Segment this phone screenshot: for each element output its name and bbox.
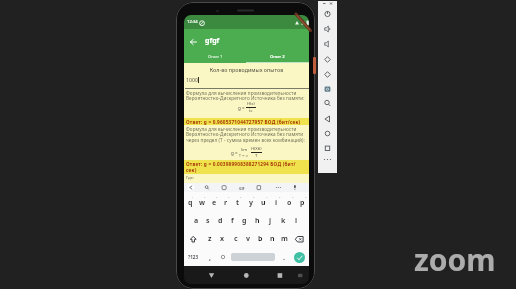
button[interactable] (318, 125, 337, 141)
staticText: lim (241, 147, 248, 153)
staticText: i (275, 198, 278, 208)
button[interactable] (267, 266, 309, 284)
staticText: ?123 (188, 254, 199, 260)
staticText: 2 (204, 196, 206, 199)
staticText: c (234, 234, 238, 244)
button[interactable] (290, 230, 309, 248)
staticText: j (269, 216, 272, 226)
staticText: 12:34 (187, 19, 198, 25)
button[interactable]: 6 (244, 194, 257, 212)
staticText: t̄c (249, 108, 253, 114)
staticText: h (255, 216, 260, 226)
staticText: m (281, 234, 288, 244)
button[interactable]: d (214, 212, 226, 230)
button[interactable]: 2 (196, 194, 208, 212)
button[interactable] (318, 31, 337, 46)
button[interactable] (187, 35, 200, 48)
staticText: Кол-во проводимых опытов (184, 66, 309, 73)
button[interactable]: b (254, 230, 266, 248)
staticText: z (208, 234, 212, 244)
button[interactable] (184, 230, 203, 248)
button[interactable]: z (203, 230, 216, 248)
button[interactable]: 4 (220, 194, 232, 212)
button[interactable]: Опыт 1 (184, 51, 246, 63)
staticText: u (261, 198, 266, 208)
staticText: Формула для вычисления производительност… (186, 90, 305, 102)
button[interactable] (318, 157, 337, 173)
button[interactable]: a (190, 212, 202, 230)
button[interactable]: 0 (296, 194, 309, 212)
button[interactable] (318, 93, 337, 109)
staticText: 9 (292, 196, 294, 199)
button[interactable]: 5 (232, 194, 244, 212)
button[interactable] (231, 253, 275, 261)
staticText: t (236, 198, 240, 208)
button[interactable]: g (238, 212, 251, 230)
staticText: gfgf (205, 36, 220, 46)
button[interactable]: . (277, 248, 290, 266)
button[interactable]: f (226, 212, 238, 230)
staticText: 8 (279, 196, 281, 199)
staticText: v (246, 234, 250, 244)
staticText: T (255, 153, 258, 159)
button[interactable] (318, 109, 337, 125)
button[interactable]: l (290, 212, 303, 230)
staticText: Ответ: g = 0.9605371044727957 БОД (бит/с… (186, 119, 301, 125)
button[interactable]: h (251, 212, 264, 230)
button[interactable]: , (203, 248, 216, 266)
staticText: e (212, 198, 217, 208)
button[interactable]: 9 (283, 194, 296, 212)
button[interactable]: j (264, 212, 277, 230)
staticText: g = (231, 150, 239, 156)
button[interactable]: ?123 (184, 248, 203, 266)
staticText: 7 (266, 196, 268, 199)
staticText: l (295, 216, 298, 226)
button[interactable] (290, 248, 309, 266)
staticText: d (218, 216, 223, 226)
staticText: 6 (253, 196, 255, 199)
button[interactable] (318, 16, 337, 31)
button[interactable]: m (278, 230, 290, 248)
staticText: . (283, 253, 285, 262)
button[interactable]: s (202, 212, 214, 230)
button[interactable]: x (216, 230, 229, 248)
button[interactable] (318, 46, 337, 61)
staticText: Формула для вычисления производительност… (186, 126, 305, 144)
staticText: Опыт 1 (208, 54, 223, 60)
button[interactable]: Опыт 2 (246, 51, 309, 63)
button[interactable] (225, 266, 267, 284)
staticText: 0 (305, 196, 307, 199)
button[interactable]: v (242, 230, 254, 248)
staticText: 5 (240, 196, 242, 199)
staticText: r (224, 198, 228, 208)
button[interactable]: 3 (208, 194, 220, 212)
button[interactable] (318, 141, 337, 157)
staticText: q (188, 198, 193, 208)
staticText: b (258, 234, 263, 244)
staticText: , (209, 253, 211, 262)
button[interactable]: 1 (184, 194, 196, 212)
staticText: H(Xб) (251, 146, 262, 152)
staticText: y (249, 198, 253, 208)
staticText: Опыт 2 (270, 54, 285, 60)
staticText: p (300, 198, 305, 208)
button[interactable]: n (266, 230, 278, 248)
button[interactable]: 8 (270, 194, 283, 212)
staticText: 3 (216, 196, 218, 199)
button[interactable] (216, 248, 229, 266)
staticText: g = (238, 105, 246, 111)
staticText: Ответ: g = 0.003989908388271294 БОД (бит… (186, 161, 296, 173)
button[interactable] (318, 1, 337, 16)
staticText: 1000 (186, 76, 198, 83)
button[interactable] (318, 61, 337, 77)
button[interactable] (318, 77, 337, 93)
staticText: g (242, 216, 247, 226)
button[interactable]: 7 (257, 194, 270, 212)
staticText: 4 (228, 196, 230, 199)
staticText: f (231, 216, 234, 226)
button[interactable]: c (229, 230, 242, 248)
button[interactable] (184, 266, 225, 284)
button[interactable]: k (277, 212, 290, 230)
staticText: 1 (192, 196, 194, 199)
staticText: Где: (186, 174, 195, 180)
